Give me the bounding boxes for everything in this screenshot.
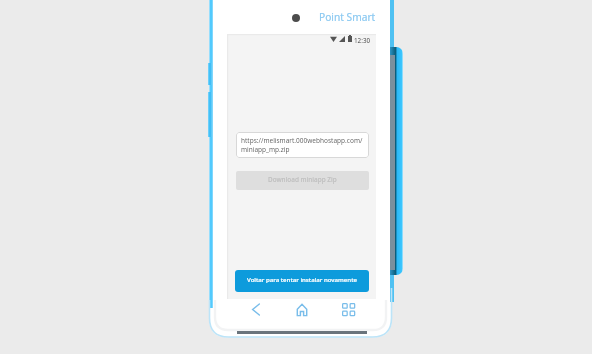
button[interactable]: Back bbox=[245, 298, 267, 321]
staticText: Download miniapp Zip bbox=[268, 175, 337, 184]
button[interactable]: Home bbox=[291, 298, 313, 321]
staticText: https://melismart.000webhostapp.com/ min… bbox=[241, 136, 363, 154]
button[interactable]: Download miniapp Zip bbox=[236, 171, 369, 190]
staticText: Voltar para tentar instalar novamente bbox=[247, 275, 357, 283]
staticText: Point Smart bbox=[319, 10, 376, 24]
button[interactable]: Voltar para tentar instalar novamente bbox=[235, 270, 369, 292]
button[interactable]: Recent apps bbox=[337, 298, 359, 321]
staticText: 12:30 bbox=[354, 36, 371, 45]
button[interactable]: https://melismart.000webhostapp.com/ min… bbox=[236, 132, 369, 158]
